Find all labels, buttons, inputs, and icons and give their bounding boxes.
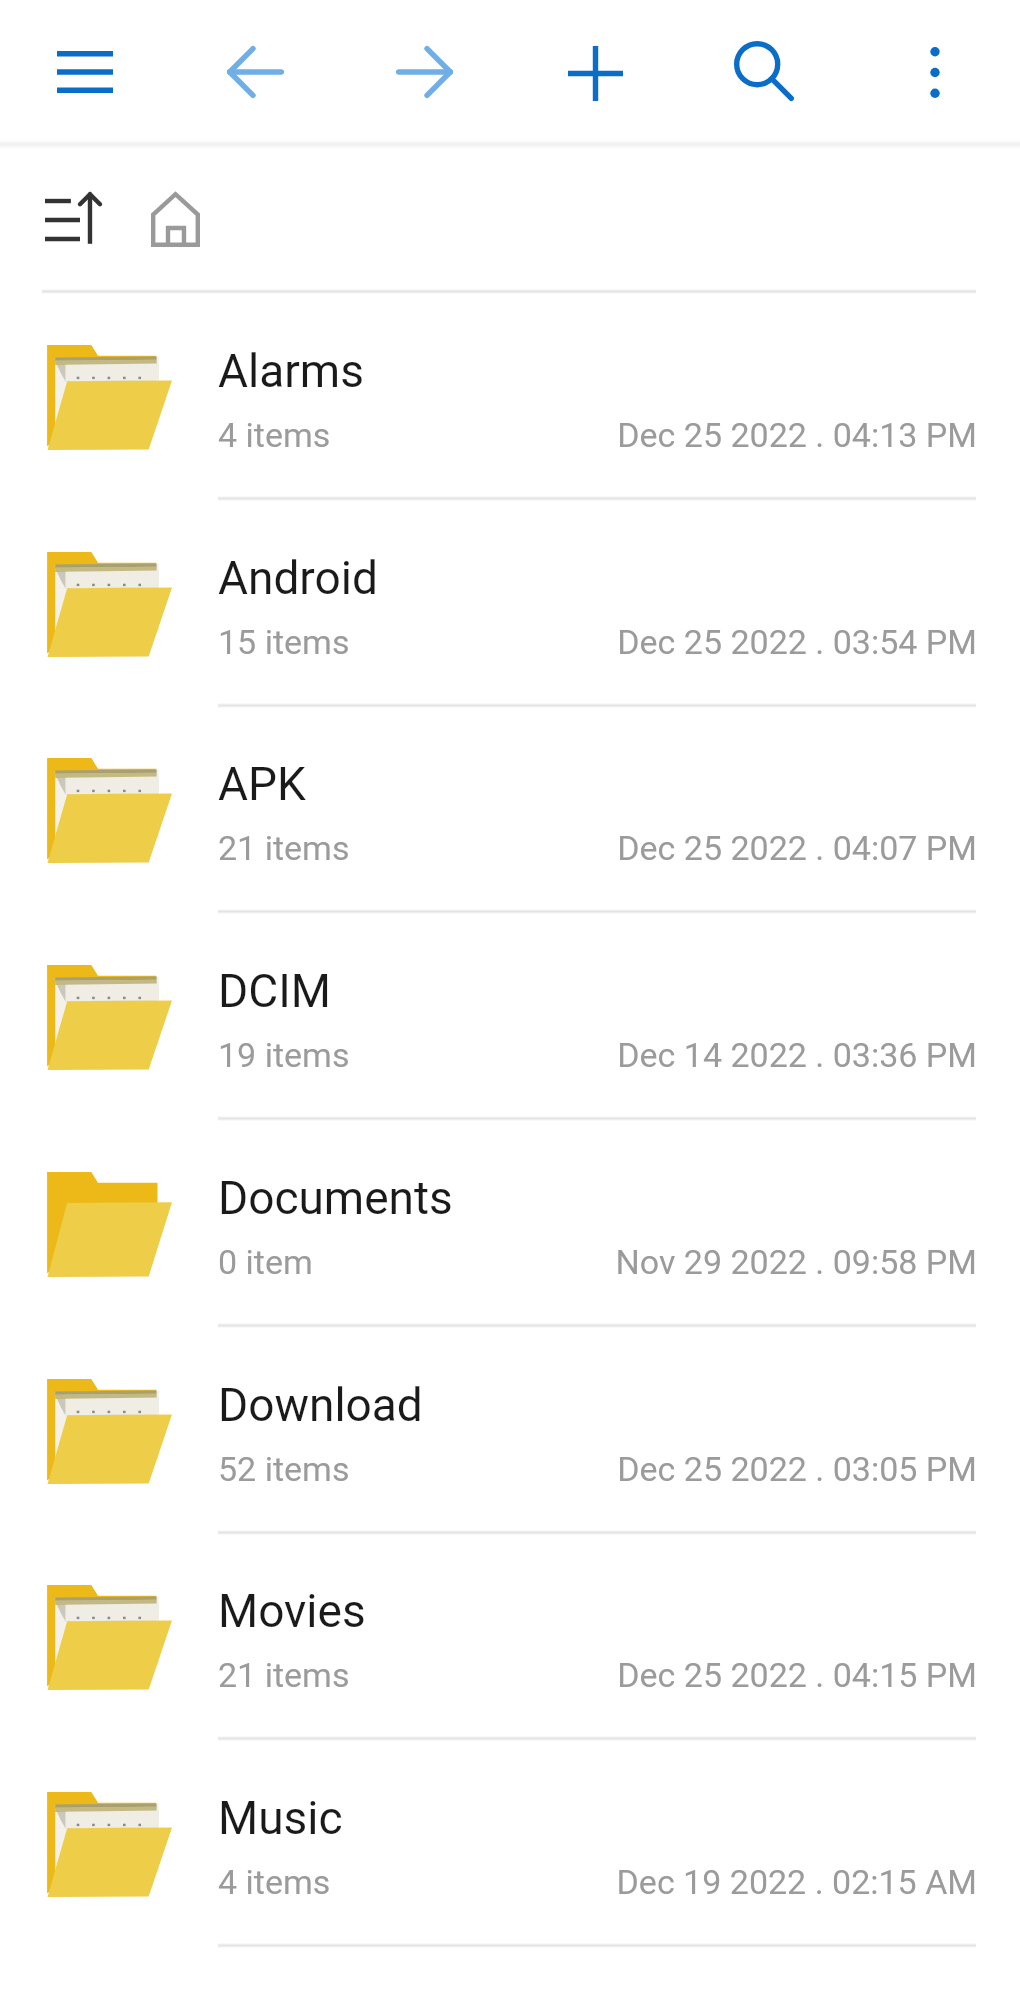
button[interactable]: APK <box>0 706 1020 913</box>
staticText: Movies <box>218 1584 366 1638</box>
button[interactable]: Home <box>135 176 216 263</box>
staticText: APK <box>218 757 306 811</box>
staticText: Alarms <box>218 344 364 398</box>
staticText: 0 item <box>218 1242 313 1282</box>
staticText: 21 items <box>218 1655 350 1695</box>
staticText: 19 items <box>218 1035 350 1075</box>
staticText: Dec 25 2022 . 04:13 PM <box>500 415 977 455</box>
button[interactable]: Sort <box>28 176 108 262</box>
staticText: Dec 19 2022 . 02:15 AM <box>500 1862 977 1902</box>
staticText: Dec 25 2022 . 03:54 PM <box>500 622 977 662</box>
button[interactable]: Movies <box>0 1533 1020 1740</box>
staticText: Download <box>218 1378 423 1432</box>
staticText: Dec 25 2022 . 04:07 PM <box>500 828 977 868</box>
button[interactable]: Alarms <box>0 293 1020 500</box>
button[interactable]: Forward <box>380 30 469 114</box>
staticText: 52 items <box>218 1449 350 1489</box>
button[interactable]: Documents <box>0 1120 1020 1327</box>
staticText: Dec 14 2022 . 03:36 PM <box>500 1035 977 1075</box>
staticText: Android <box>218 551 378 605</box>
staticText: 4 items <box>218 415 331 455</box>
staticText: Music <box>218 1791 343 1845</box>
staticText: 4 items <box>218 1862 331 1902</box>
button[interactable]: DCIM <box>0 913 1020 1120</box>
button[interactable]: Menu <box>41 35 129 109</box>
staticText: 15 items <box>218 622 350 662</box>
button[interactable]: Music <box>0 1740 1020 1947</box>
staticText: Dec 25 2022 . 03:05 PM <box>500 1449 977 1489</box>
staticText: DCIM <box>218 964 331 1018</box>
button[interactable]: Back <box>211 30 300 114</box>
button[interactable]: Download <box>0 1327 1020 1534</box>
staticText: Documents <box>218 1171 453 1225</box>
staticText: Dec 25 2022 . 04:15 PM <box>500 1655 977 1695</box>
button[interactable]: More options <box>914 31 956 114</box>
button[interactable]: Search <box>718 25 810 117</box>
button[interactable]: Add <box>552 30 639 117</box>
staticText: 21 items <box>218 828 350 868</box>
button[interactable]: Android <box>0 500 1020 707</box>
staticText: Nov 29 2022 . 09:58 PM <box>500 1242 977 1282</box>
